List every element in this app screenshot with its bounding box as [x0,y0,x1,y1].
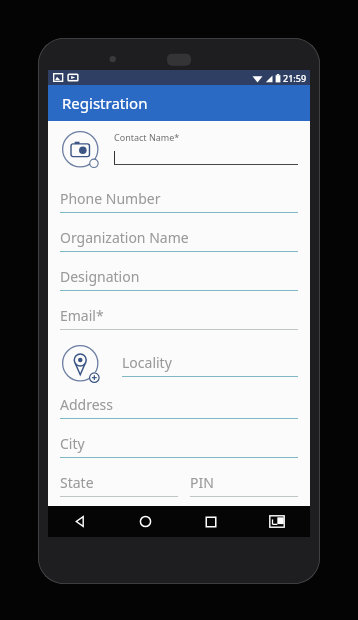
staticText: Locality [122,353,172,372]
staticText: PIN [190,473,214,492]
button[interactable]: Organization Name [60,228,298,252]
staticText: Organization Name [60,228,189,247]
staticText: 21:59 [283,72,307,84]
button[interactable]: Add photo [60,129,104,173]
staticText: Designation [60,267,140,286]
button[interactable]: Designation [60,267,298,291]
button[interactable]: Screenshot [244,506,310,537]
button[interactable]: Home [113,506,178,537]
staticText: Registration [62,93,148,113]
button[interactable]: Registration [48,85,310,121]
staticText: Email* [60,306,104,325]
button[interactable]: State [60,473,178,497]
staticText: REGISTER [147,517,211,536]
button[interactable]: Email* [60,306,298,330]
button[interactable]: PIN [190,473,298,497]
button[interactable]: Phone Number [60,189,298,213]
staticText: City [60,434,85,453]
button[interactable]: Back [48,506,113,537]
staticText: Contact Name* [114,131,180,143]
button[interactable]: Recent apps [178,506,244,537]
button[interactable]: Add location [60,343,104,387]
button[interactable]: City [60,434,298,458]
button[interactable]: Address [60,395,298,419]
staticText: Address [60,395,113,414]
button[interactable]: Contact Name* [114,131,298,165]
button[interactable]: Locality [122,353,298,377]
button[interactable]: REGISTER [60,515,298,537]
staticText: Phone Number [60,189,161,208]
staticText: State [60,473,94,492]
